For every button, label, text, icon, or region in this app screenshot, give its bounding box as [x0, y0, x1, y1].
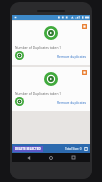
staticText: Remove duplicates	[57, 54, 87, 58]
button[interactable]: Play video	[44, 26, 58, 40]
button[interactable]: DELETE SELECTED	[13, 146, 43, 152]
staticText: Remove duplicates	[57, 100, 87, 104]
staticText: DELETE SELECTED	[15, 147, 41, 151]
staticText: Total Size: 0	[65, 147, 82, 151]
button[interactable]: Remove duplicates	[57, 54, 87, 58]
button[interactable]: Back	[24, 153, 34, 162]
staticText: Number of Duplicates taken 1	[15, 45, 62, 49]
staticText: Number of Duplicates taken 1	[15, 91, 62, 95]
button[interactable]: Select duplicate group	[82, 70, 87, 75]
button[interactable]: Play video	[44, 72, 58, 86]
button[interactable]: Select duplicate group	[82, 24, 87, 29]
button[interactable]: Recent apps	[68, 153, 78, 162]
button[interactable]: Storage info	[84, 147, 88, 151]
button[interactable]: Remove duplicates	[57, 100, 87, 104]
button[interactable]: Play duplicate file	[15, 51, 24, 60]
button[interactable]: Play duplicate file	[15, 97, 24, 106]
button[interactable]: Select duplicate group	[12, 67, 90, 111]
button[interactable]: Select duplicate group	[12, 21, 90, 65]
button[interactable]: Home	[46, 153, 56, 162]
